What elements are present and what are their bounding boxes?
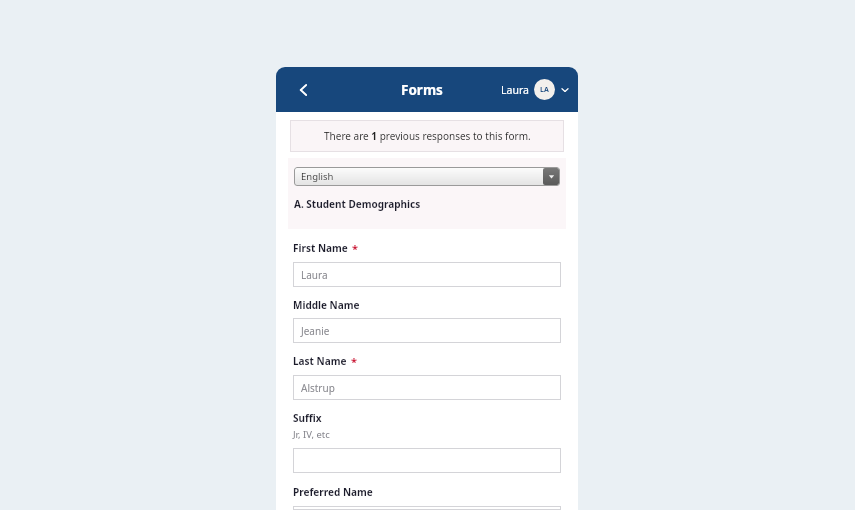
button[interactable]: English — [294, 167, 560, 186]
button[interactable] — [293, 506, 561, 510]
staticText: First Name — [293, 241, 348, 255]
button[interactable]: Alstrup — [293, 375, 561, 400]
staticText: Jeanie — [301, 324, 330, 338]
button[interactable]: Jeanie — [293, 318, 561, 343]
staticText: Preferred Name — [293, 485, 373, 499]
staticText: Forms — [401, 81, 443, 99]
staticText: Jr, IV, etc — [293, 428, 330, 441]
staticText: Suffix — [293, 411, 322, 425]
button[interactable]: Laura — [293, 262, 561, 287]
staticText: LA — [540, 85, 549, 95]
staticText: Laura — [301, 268, 328, 282]
staticText: * — [351, 354, 357, 369]
staticText: A. Student Demographics — [294, 197, 421, 211]
staticText: Alstrup — [301, 381, 335, 395]
button[interactable] — [293, 448, 561, 473]
staticText: Last Name — [293, 354, 347, 368]
staticText: There are 1 previous responses to this f… — [324, 129, 531, 143]
staticText: Laura — [501, 83, 529, 97]
staticText: English — [301, 170, 334, 183]
staticText: Middle Name — [293, 298, 360, 312]
button[interactable]: Back — [288, 74, 320, 106]
staticText: * — [352, 241, 358, 256]
button[interactable]: Laura — [501, 79, 570, 100]
